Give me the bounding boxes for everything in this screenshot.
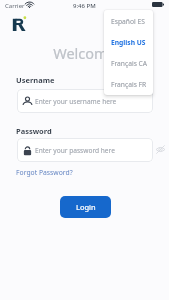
button[interactable]: Login — [60, 196, 111, 218]
button[interactable]: Forgot Password? — [16, 168, 73, 177]
button[interactable]: Show password — [155, 144, 166, 155]
staticText: Español ES — [111, 17, 145, 26]
button[interactable]: Enter your username here — [17, 89, 153, 113]
button[interactable]: Español ES — [104, 11, 153, 32]
staticText: Username — [16, 75, 55, 85]
button[interactable]: Français FR — [104, 74, 153, 95]
staticText: Carrier — [5, 2, 25, 10]
button[interactable]: English US — [104, 32, 153, 53]
button[interactable]: Français CA — [104, 53, 153, 74]
staticText: Enter your password here — [35, 146, 115, 155]
staticText: Français FR — [111, 80, 147, 89]
staticText: 9:46 PM — [73, 2, 96, 10]
staticText: Login — [76, 202, 96, 212]
staticText: Français CA — [111, 59, 148, 68]
staticText: Welcome — [0, 43, 169, 63]
staticText: English US — [111, 38, 146, 47]
staticText: Password — [16, 126, 52, 136]
button[interactable]: Enter your password here — [17, 138, 153, 162]
staticText: Enter your username here — [35, 97, 117, 106]
